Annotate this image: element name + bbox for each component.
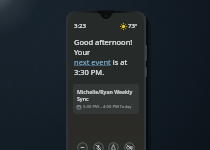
staticText: Michelle/Ryan Weekly Sync: [77, 88, 135, 102]
button[interactable]: Do not disturb: [77, 142, 88, 150]
staticText: 73°: [128, 22, 138, 30]
button[interactable]: Turn off camera: [124, 142, 135, 150]
button[interactable]: Good afternoon! Your next event is at 3:…: [74, 37, 138, 77]
button[interactable]: Mute microphone: [93, 142, 104, 150]
staticText: 3:23: [74, 22, 86, 30]
button[interactable]: Raise hand: [108, 142, 119, 150]
staticText: 3:30 PM – 4:00 PM Today: [83, 104, 132, 110]
button[interactable]: Michelle/Ryan Weekly Sync: [73, 84, 139, 114]
